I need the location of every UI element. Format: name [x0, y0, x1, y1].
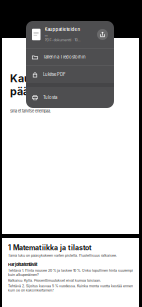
- staticText: Kauppatieteiden pääsykoeopas: [10, 72, 97, 98]
- button[interactable]: Lukitse PDF: [26, 66, 114, 83]
- staticText: Sinä et tarvitse enempää.: [10, 109, 51, 113]
- staticText: Tehtävä 2. Sijoitus kasvaa 5 % vuodessa.…: [8, 284, 133, 292]
- button[interactable]: Share: [97, 29, 108, 40]
- staticText: Tallenna Tiedostoihin: [43, 54, 86, 60]
- staticText: Tehtävä 1. Hinta nousee 20 % ja laskee 1…: [8, 268, 133, 277]
- staticText: 1 Matematiikka ja tilastot: [8, 243, 92, 252]
- button[interactable]: Tulosta: [26, 87, 114, 108]
- staticText: Tulosta: [43, 95, 57, 100]
- staticText: Harjoitustehtävät: [8, 262, 37, 267]
- staticText: Ratkaisu: Kyllä. Prosenttimuutokset eivä…: [8, 278, 101, 282]
- staticText: Kauppatieteiden...: [44, 27, 80, 37]
- staticText: Lukitse PDF: [43, 72, 66, 77]
- staticText: Tämä luku on pääsykokeen varten pisteltä…: [8, 253, 117, 258]
- button[interactable]: Tallenna Tiedostoihin: [26, 48, 114, 65]
- staticText: PDF-dokumentti · 10...: [44, 38, 80, 42]
